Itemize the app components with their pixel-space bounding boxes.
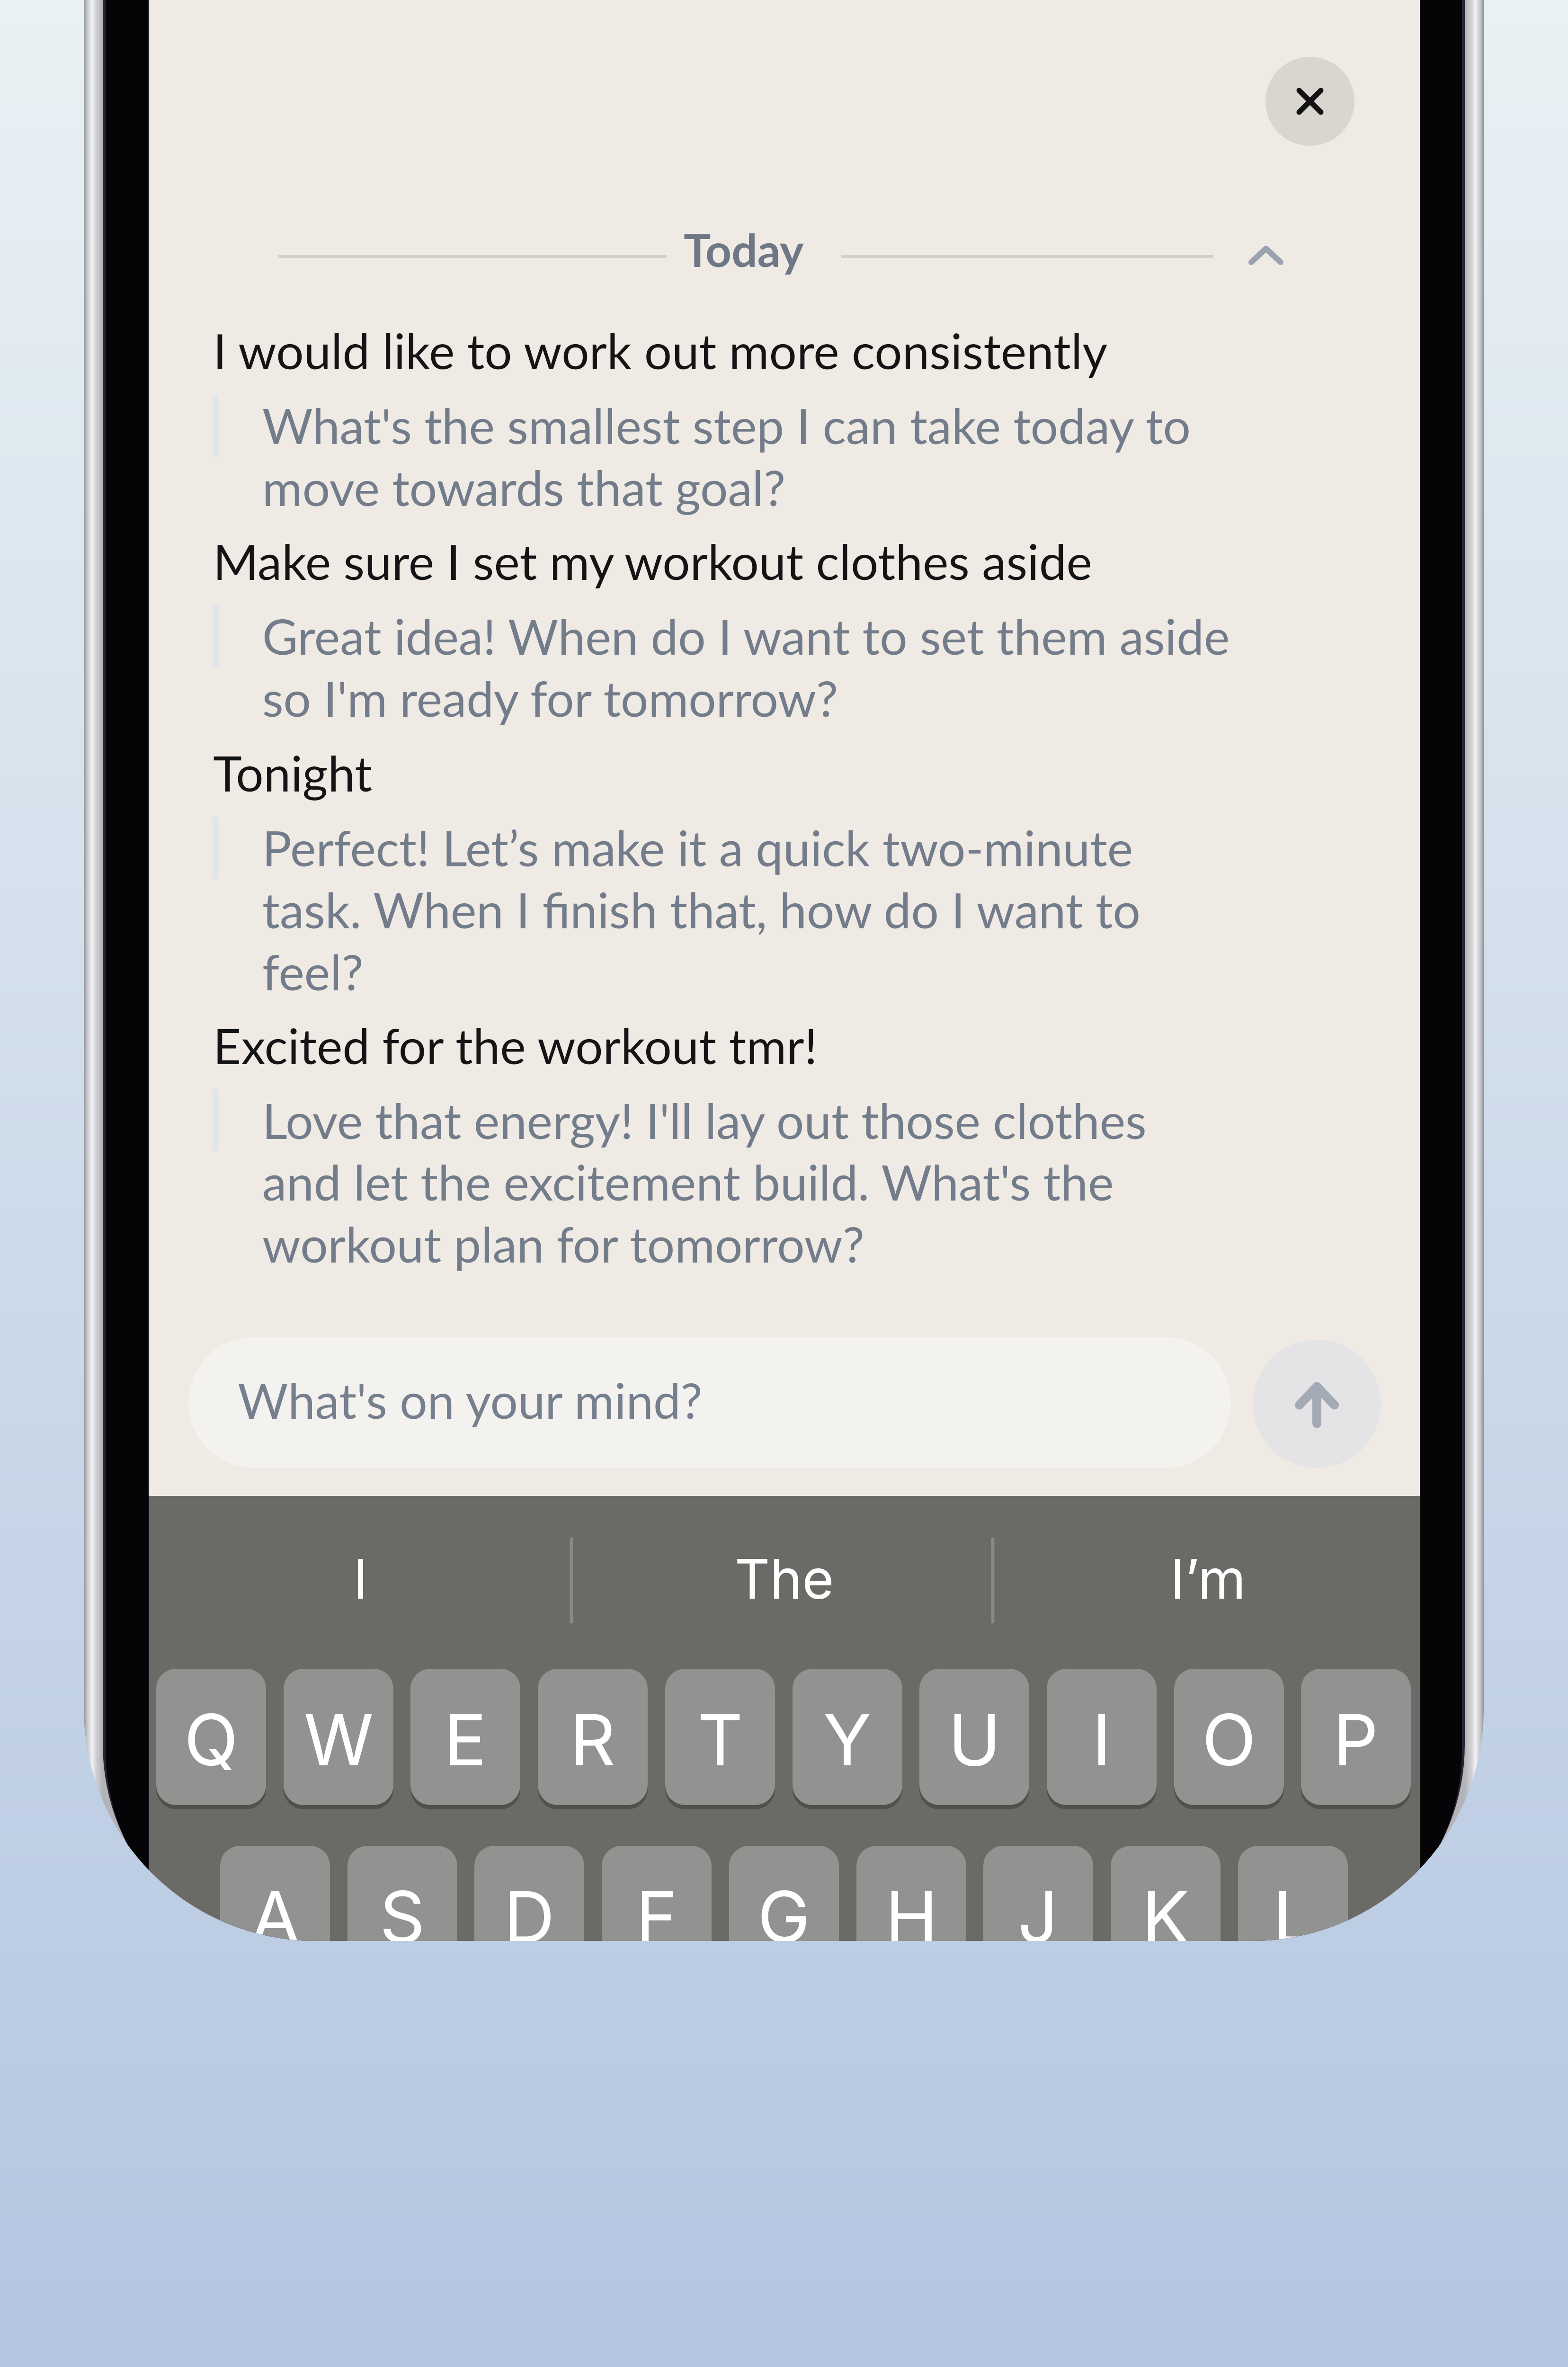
staticText: Make sure I set my workout clothes aside	[213, 532, 1092, 590]
staticText: H	[885, 1874, 938, 1941]
button[interactable]: S	[347, 1846, 457, 1941]
button[interactable]: D	[474, 1846, 584, 1941]
staticText: Tonight	[213, 743, 373, 802]
staticText: Q	[184, 1697, 238, 1782]
button[interactable]: What's on your mind?	[188, 1337, 1231, 1468]
staticText: workout plan for tomorrow?	[262, 1214, 864, 1273]
button[interactable]: G	[729, 1846, 839, 1941]
staticText: F	[636, 1874, 677, 1941]
button[interactable]: H	[856, 1846, 966, 1941]
staticText: I	[1092, 1697, 1112, 1782]
button[interactable]: Collapse	[1231, 221, 1301, 291]
staticText: W	[304, 1697, 374, 1782]
staticText: E	[444, 1697, 487, 1782]
staticText: feel?	[262, 942, 364, 1001]
staticText: Today	[684, 222, 804, 276]
staticText: What's on your mind?	[238, 1370, 703, 1429]
staticText: so I'm ready for tomorrow?	[262, 668, 838, 727]
button[interactable]: U	[919, 1669, 1029, 1805]
staticText: D	[504, 1874, 555, 1941]
button[interactable]: Y	[793, 1669, 902, 1805]
staticText: Perfect! Let’s make it a quick two-minut…	[262, 818, 1133, 877]
staticText: move towards that goal?	[262, 458, 785, 516]
staticText: The	[735, 1546, 834, 1612]
button[interactable]: I	[149, 1496, 572, 1662]
button[interactable]: O	[1174, 1669, 1284, 1805]
staticText: What's the smallest step I can take toda…	[262, 396, 1191, 454]
button[interactable]: A	[220, 1846, 330, 1941]
staticText: G	[757, 1874, 811, 1941]
staticText: K	[1142, 1874, 1190, 1941]
staticText: T	[697, 1697, 743, 1782]
button[interactable]: J	[983, 1846, 1093, 1941]
button[interactable]: Send	[1253, 1340, 1381, 1468]
staticText: P	[1333, 1697, 1379, 1782]
button[interactable]: F	[602, 1846, 712, 1941]
staticText: S	[380, 1874, 425, 1941]
button[interactable]: P	[1301, 1669, 1411, 1805]
button[interactable]: The	[572, 1496, 996, 1662]
staticText: A	[251, 1874, 300, 1941]
staticText: I would like to work out more consistent…	[213, 321, 1108, 380]
button[interactable]: K	[1111, 1846, 1221, 1941]
button[interactable]: E	[410, 1669, 520, 1805]
staticText: J	[1018, 1874, 1059, 1941]
staticText: Great idea! When do I want to set them a…	[262, 606, 1230, 665]
staticText: Excited for the workout tmr!	[213, 1016, 818, 1075]
staticText: task. When I finish that, how do I want …	[262, 880, 1140, 939]
button[interactable]: W	[284, 1669, 393, 1805]
staticText: I	[353, 1546, 368, 1612]
staticText: and let the excitement build. What's the	[262, 1152, 1114, 1211]
staticText: O	[1202, 1697, 1256, 1782]
button[interactable]: Close	[1265, 57, 1354, 146]
button[interactable]: I’m	[996, 1496, 1420, 1662]
staticText: L	[1273, 1874, 1313, 1941]
button[interactable]: R	[538, 1669, 648, 1805]
staticText: U	[948, 1697, 1001, 1782]
button[interactable]: L	[1238, 1846, 1348, 1941]
button[interactable]: Q	[156, 1669, 266, 1805]
button[interactable]: T	[665, 1669, 775, 1805]
staticText: Love that energy! I'll lay out those clo…	[262, 1091, 1147, 1149]
staticText: I’m	[1170, 1546, 1246, 1612]
staticText: R	[570, 1697, 615, 1782]
staticText: Y	[823, 1697, 872, 1782]
button[interactable]: I	[1047, 1669, 1157, 1805]
